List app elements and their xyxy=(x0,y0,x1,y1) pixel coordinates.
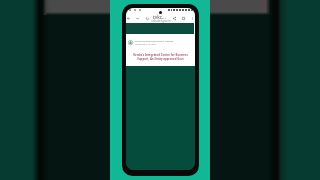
staticText: Kerala Government Official Website www.k… xyxy=(135,40,193,43)
staticText: i.abcdef.gov.in xyxy=(151,19,171,23)
button[interactable]: Tabs xyxy=(179,13,188,23)
button[interactable]: Reload page xyxy=(143,13,152,23)
button[interactable]: Back xyxy=(126,13,133,23)
button[interactable]: tvkc... xyxy=(149,13,173,23)
button[interactable]: Share xyxy=(170,13,179,23)
staticText: tvkc... xyxy=(153,14,166,20)
staticText: Government of India xyxy=(135,43,156,46)
staticText: Kerala's Integrated Centre for Business … xyxy=(127,53,194,61)
button[interactable]: Forward xyxy=(133,13,142,23)
button[interactable]: More options xyxy=(188,13,195,23)
